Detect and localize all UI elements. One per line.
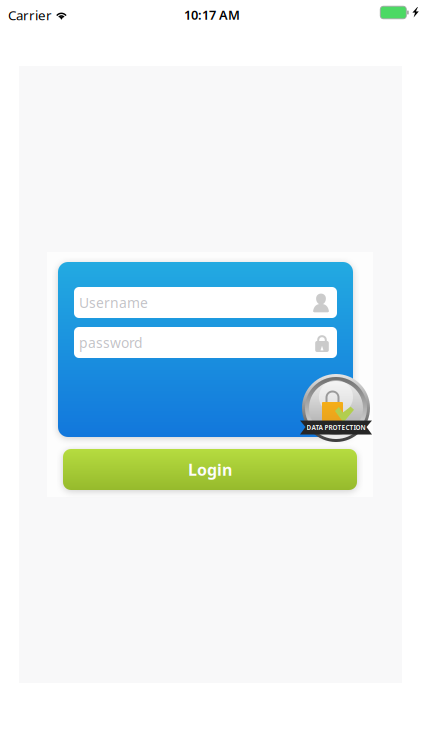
staticText: 10:17 AM [184, 6, 240, 23]
staticText: DATA PROTECTION [306, 423, 365, 432]
staticText: Username [79, 293, 148, 312]
button[interactable]: Login [63, 449, 357, 490]
staticText: Carrier [8, 6, 52, 24]
button[interactable]: password [74, 327, 337, 358]
button[interactable]: Username [74, 287, 337, 318]
staticText: Login [188, 459, 232, 480]
staticText: password [79, 333, 143, 352]
